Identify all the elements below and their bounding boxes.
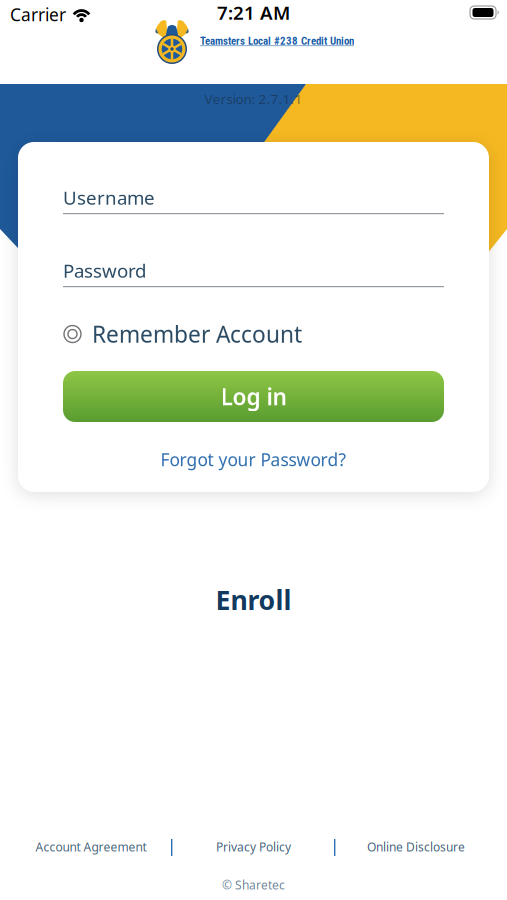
- button[interactable]: Remember Account: [64, 319, 302, 349]
- button[interactable]: Username: [63, 185, 444, 233]
- staticText: © Sharetec: [222, 877, 285, 893]
- button[interactable]: Account Agreement: [0, 839, 182, 855]
- staticText: Username: [63, 185, 155, 210]
- staticText: 7:21 AM: [217, 0, 290, 25]
- staticText: Log in: [220, 381, 286, 411]
- staticText: Version: 2.7.1.1: [204, 90, 302, 108]
- button[interactable]: Enroll: [0, 582, 507, 617]
- staticText: Remember Account: [92, 319, 302, 349]
- button[interactable]: Online Disclosure: [325, 839, 507, 855]
- staticText: Enroll: [215, 582, 291, 617]
- button[interactable]: Privacy Policy: [0, 839, 507, 855]
- button[interactable]: Password: [63, 258, 444, 306]
- staticText: Carrier: [10, 3, 66, 26]
- staticText: Forgot your Password?: [160, 448, 346, 471]
- staticText: Teamsters Local #238 Credit Union: [200, 35, 354, 47]
- staticText: Password: [63, 258, 146, 283]
- staticText: Online Disclosure: [367, 839, 465, 855]
- staticText: Privacy Policy: [216, 839, 291, 855]
- button[interactable]: Forgot your Password?: [18, 448, 489, 471]
- button[interactable]: Teamsters Local #238 Credit Union: [153, 18, 354, 64]
- staticText: Account Agreement: [35, 839, 146, 855]
- button[interactable]: Log in: [63, 371, 444, 422]
